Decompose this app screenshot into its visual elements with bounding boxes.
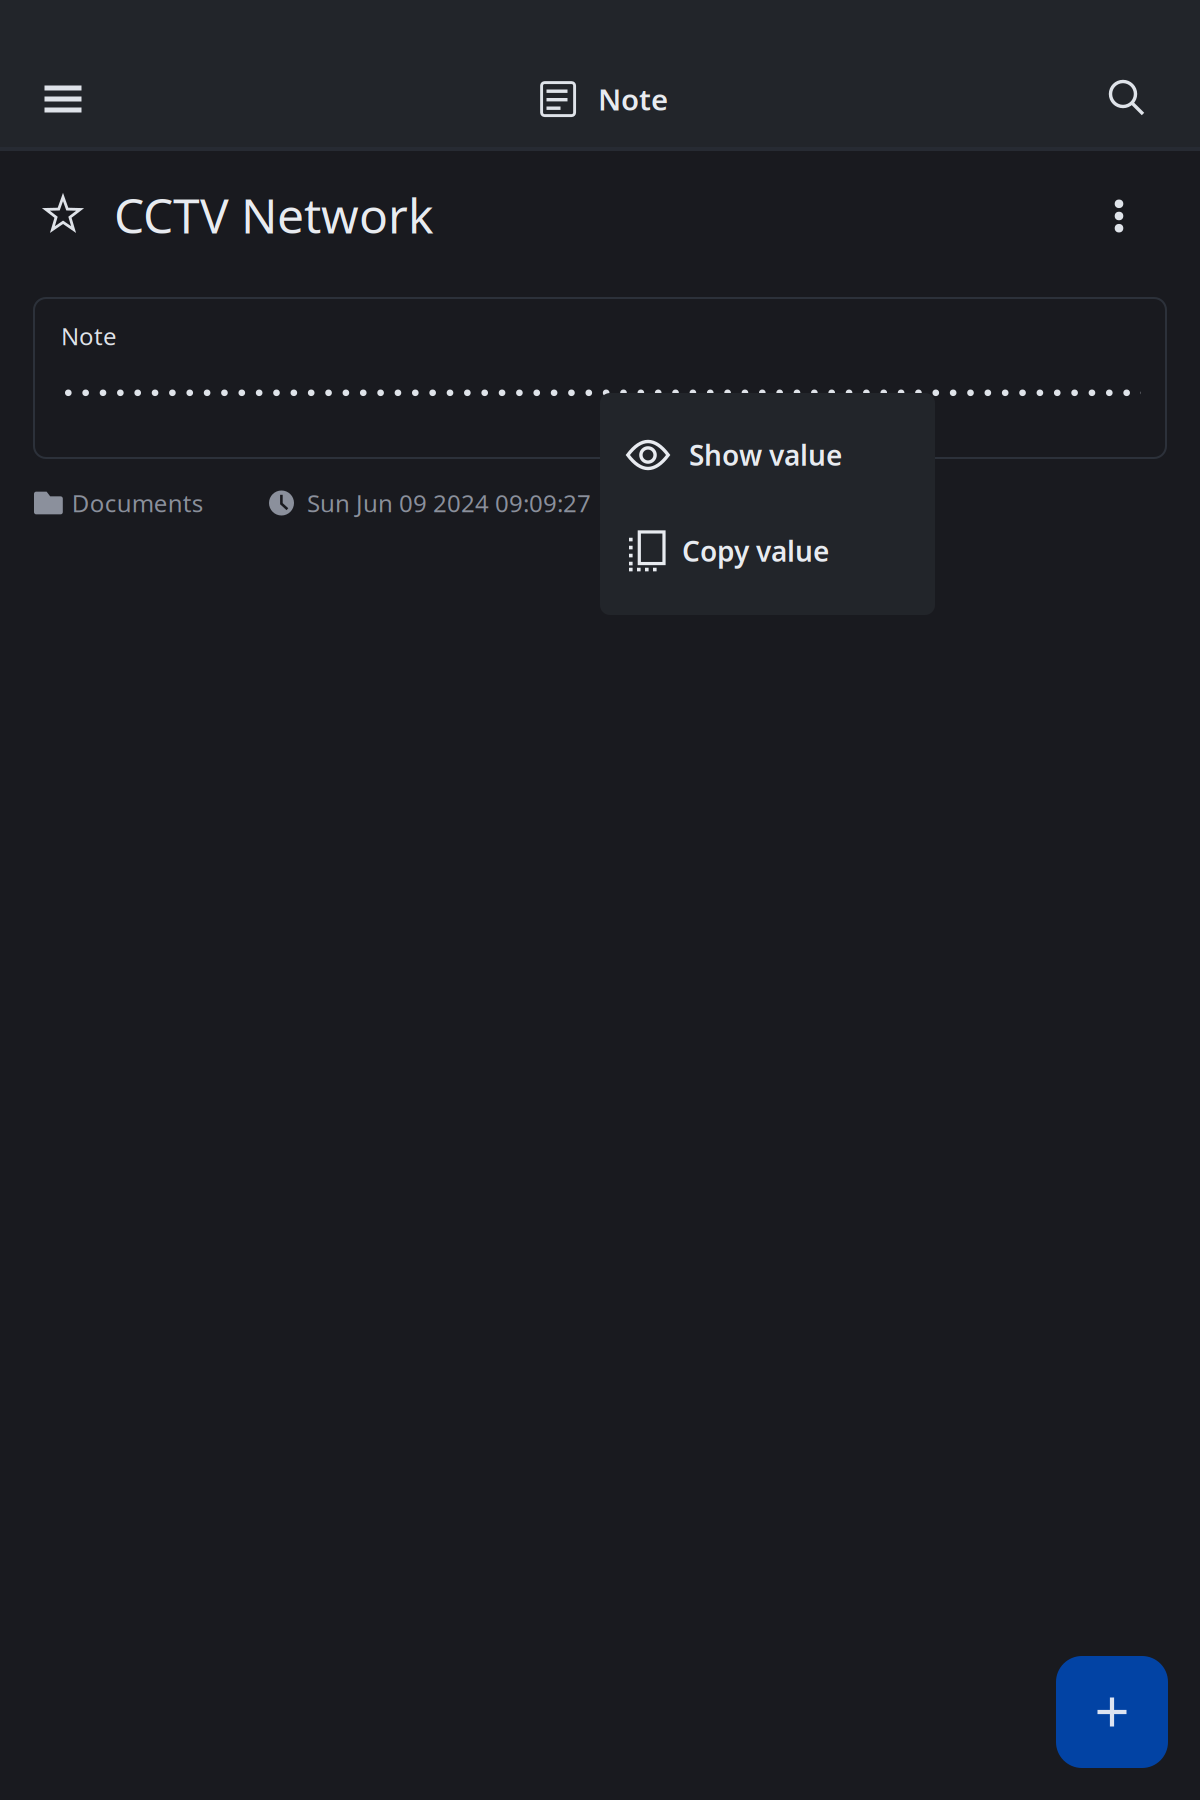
staticText: Show value xyxy=(689,436,842,474)
staticText: Note xyxy=(61,320,117,352)
staticText: Sun Jun 09 2024 09:09:27 xyxy=(307,487,591,519)
staticText: Copy value xyxy=(682,532,829,570)
button[interactable]: Favorite xyxy=(27,179,99,251)
staticText: Note xyxy=(598,79,668,118)
button[interactable]: More options xyxy=(1083,180,1155,252)
button[interactable]: Add xyxy=(1056,1656,1168,1768)
staticText: Documents xyxy=(72,487,203,519)
staticText: CCTV Network xyxy=(114,183,434,247)
button[interactable]: Copy value xyxy=(600,501,935,601)
button[interactable]: Show value xyxy=(600,405,935,505)
button[interactable]: Search xyxy=(1080,51,1176,147)
button[interactable]: Menu xyxy=(15,51,111,147)
button[interactable]: Note xyxy=(34,298,1166,458)
